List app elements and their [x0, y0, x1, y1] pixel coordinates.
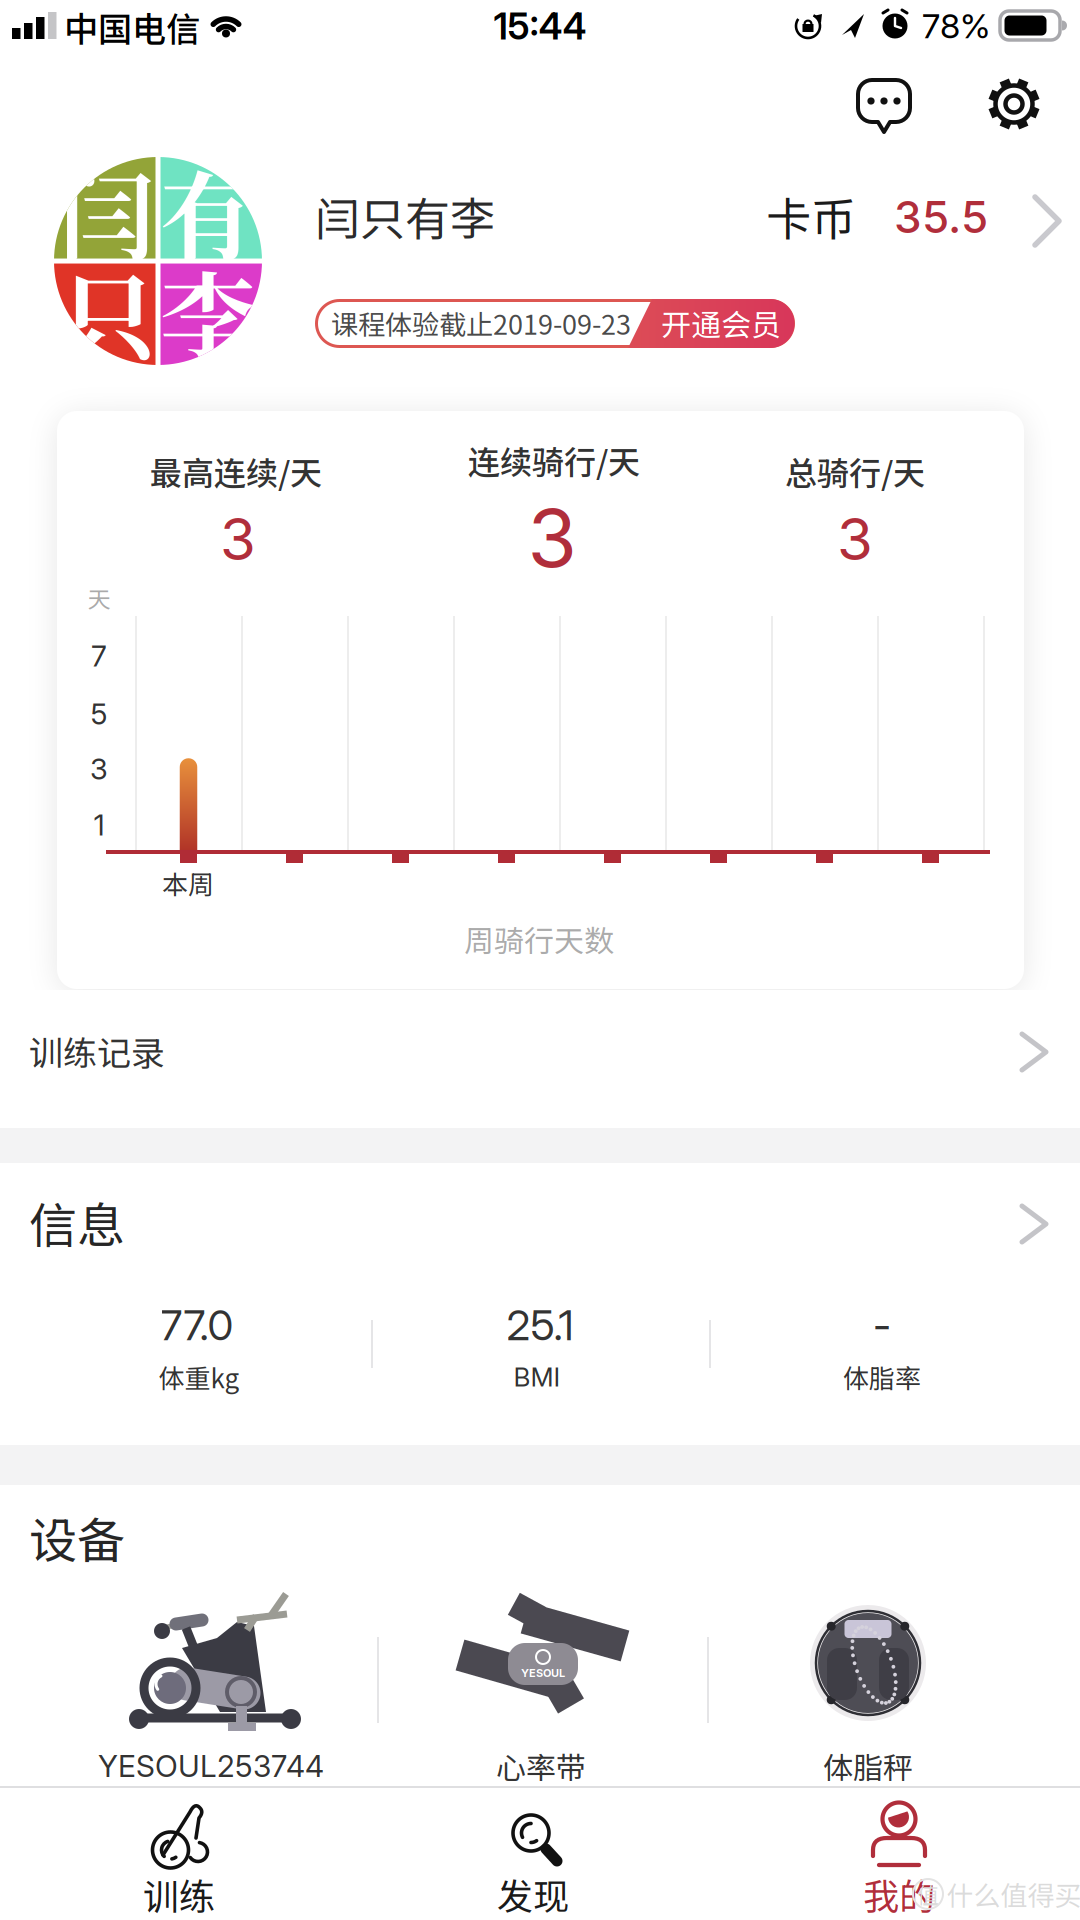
- staticText: 训练: [143, 1868, 215, 1920]
- staticText: 5: [90, 696, 107, 732]
- staticText: 1: [93, 807, 104, 843]
- staticText: 最高连续/天: [150, 448, 322, 494]
- staticText: 中国电信: [64, 2, 200, 52]
- button[interactable]: 闫: [0, 157, 1080, 365]
- staticText: 77.0: [160, 1300, 233, 1350]
- staticText: 卡币: [766, 183, 856, 249]
- staticText: 开通会员: [661, 301, 781, 345]
- button[interactable]: 发现: [443, 1788, 623, 1918]
- button[interactable]: 训练: [89, 1788, 269, 1918]
- staticText: 什么值得买: [946, 1874, 1080, 1914]
- staticText: 15:44: [493, 4, 586, 48]
- staticText: 25.1: [506, 1300, 573, 1350]
- staticText: 我的: [863, 1868, 935, 1920]
- staticText: 3: [837, 504, 873, 574]
- staticText: 35.5: [894, 190, 988, 244]
- staticText: 78%: [922, 5, 990, 46]
- staticText: 训练记录: [29, 1026, 165, 1076]
- staticText: 闫: [60, 142, 156, 280]
- button[interactable]: 我的: [809, 1788, 989, 1918]
- button[interactable]: [849, 71, 919, 141]
- button[interactable]: [979, 69, 1049, 139]
- staticText: 有: [160, 142, 256, 280]
- staticText: 连续骑行/天: [468, 437, 640, 483]
- staticText: 天: [87, 581, 110, 615]
- staticText: 体脂秤: [823, 1744, 913, 1788]
- staticText: 3: [220, 504, 256, 574]
- staticText: 值: [917, 1878, 939, 1910]
- staticText: 李: [160, 242, 256, 380]
- button[interactable]: 训练记录: [0, 990, 1080, 1128]
- button[interactable]: 信息: [0, 1163, 1080, 1275]
- staticText: YESOUL253744: [98, 1748, 324, 1784]
- button[interactable]: YESOUL: [375, 1560, 705, 1790]
- staticText: 3: [90, 751, 108, 787]
- button[interactable]: 体脂秤: [703, 1560, 1033, 1790]
- staticText: 本周: [162, 864, 214, 902]
- staticText: -: [873, 1300, 891, 1350]
- staticText: BMI: [513, 1361, 560, 1393]
- staticText: 7: [91, 638, 107, 674]
- staticText: 3: [527, 490, 576, 586]
- staticText: 体脂率: [843, 1358, 921, 1396]
- staticText: 只: [60, 242, 156, 380]
- staticText: 课程体验截止2019-09-23: [331, 303, 631, 343]
- staticText: 设备: [29, 1502, 125, 1572]
- staticText: 心率带: [496, 1744, 586, 1788]
- staticText: 体重kg: [158, 1358, 239, 1396]
- button[interactable]: YESOUL253744: [32, 1560, 388, 1790]
- staticText: 周骑行天数: [464, 917, 614, 961]
- staticText: YESOUL: [521, 1666, 565, 1680]
- staticText: 闫只有李: [315, 183, 495, 249]
- staticText: 信息: [29, 1187, 125, 1257]
- button[interactable]: 课程体验截止2019-09-23: [315, 299, 795, 348]
- staticText: 发现: [497, 1868, 569, 1920]
- staticText: 总骑行/天: [785, 448, 925, 494]
